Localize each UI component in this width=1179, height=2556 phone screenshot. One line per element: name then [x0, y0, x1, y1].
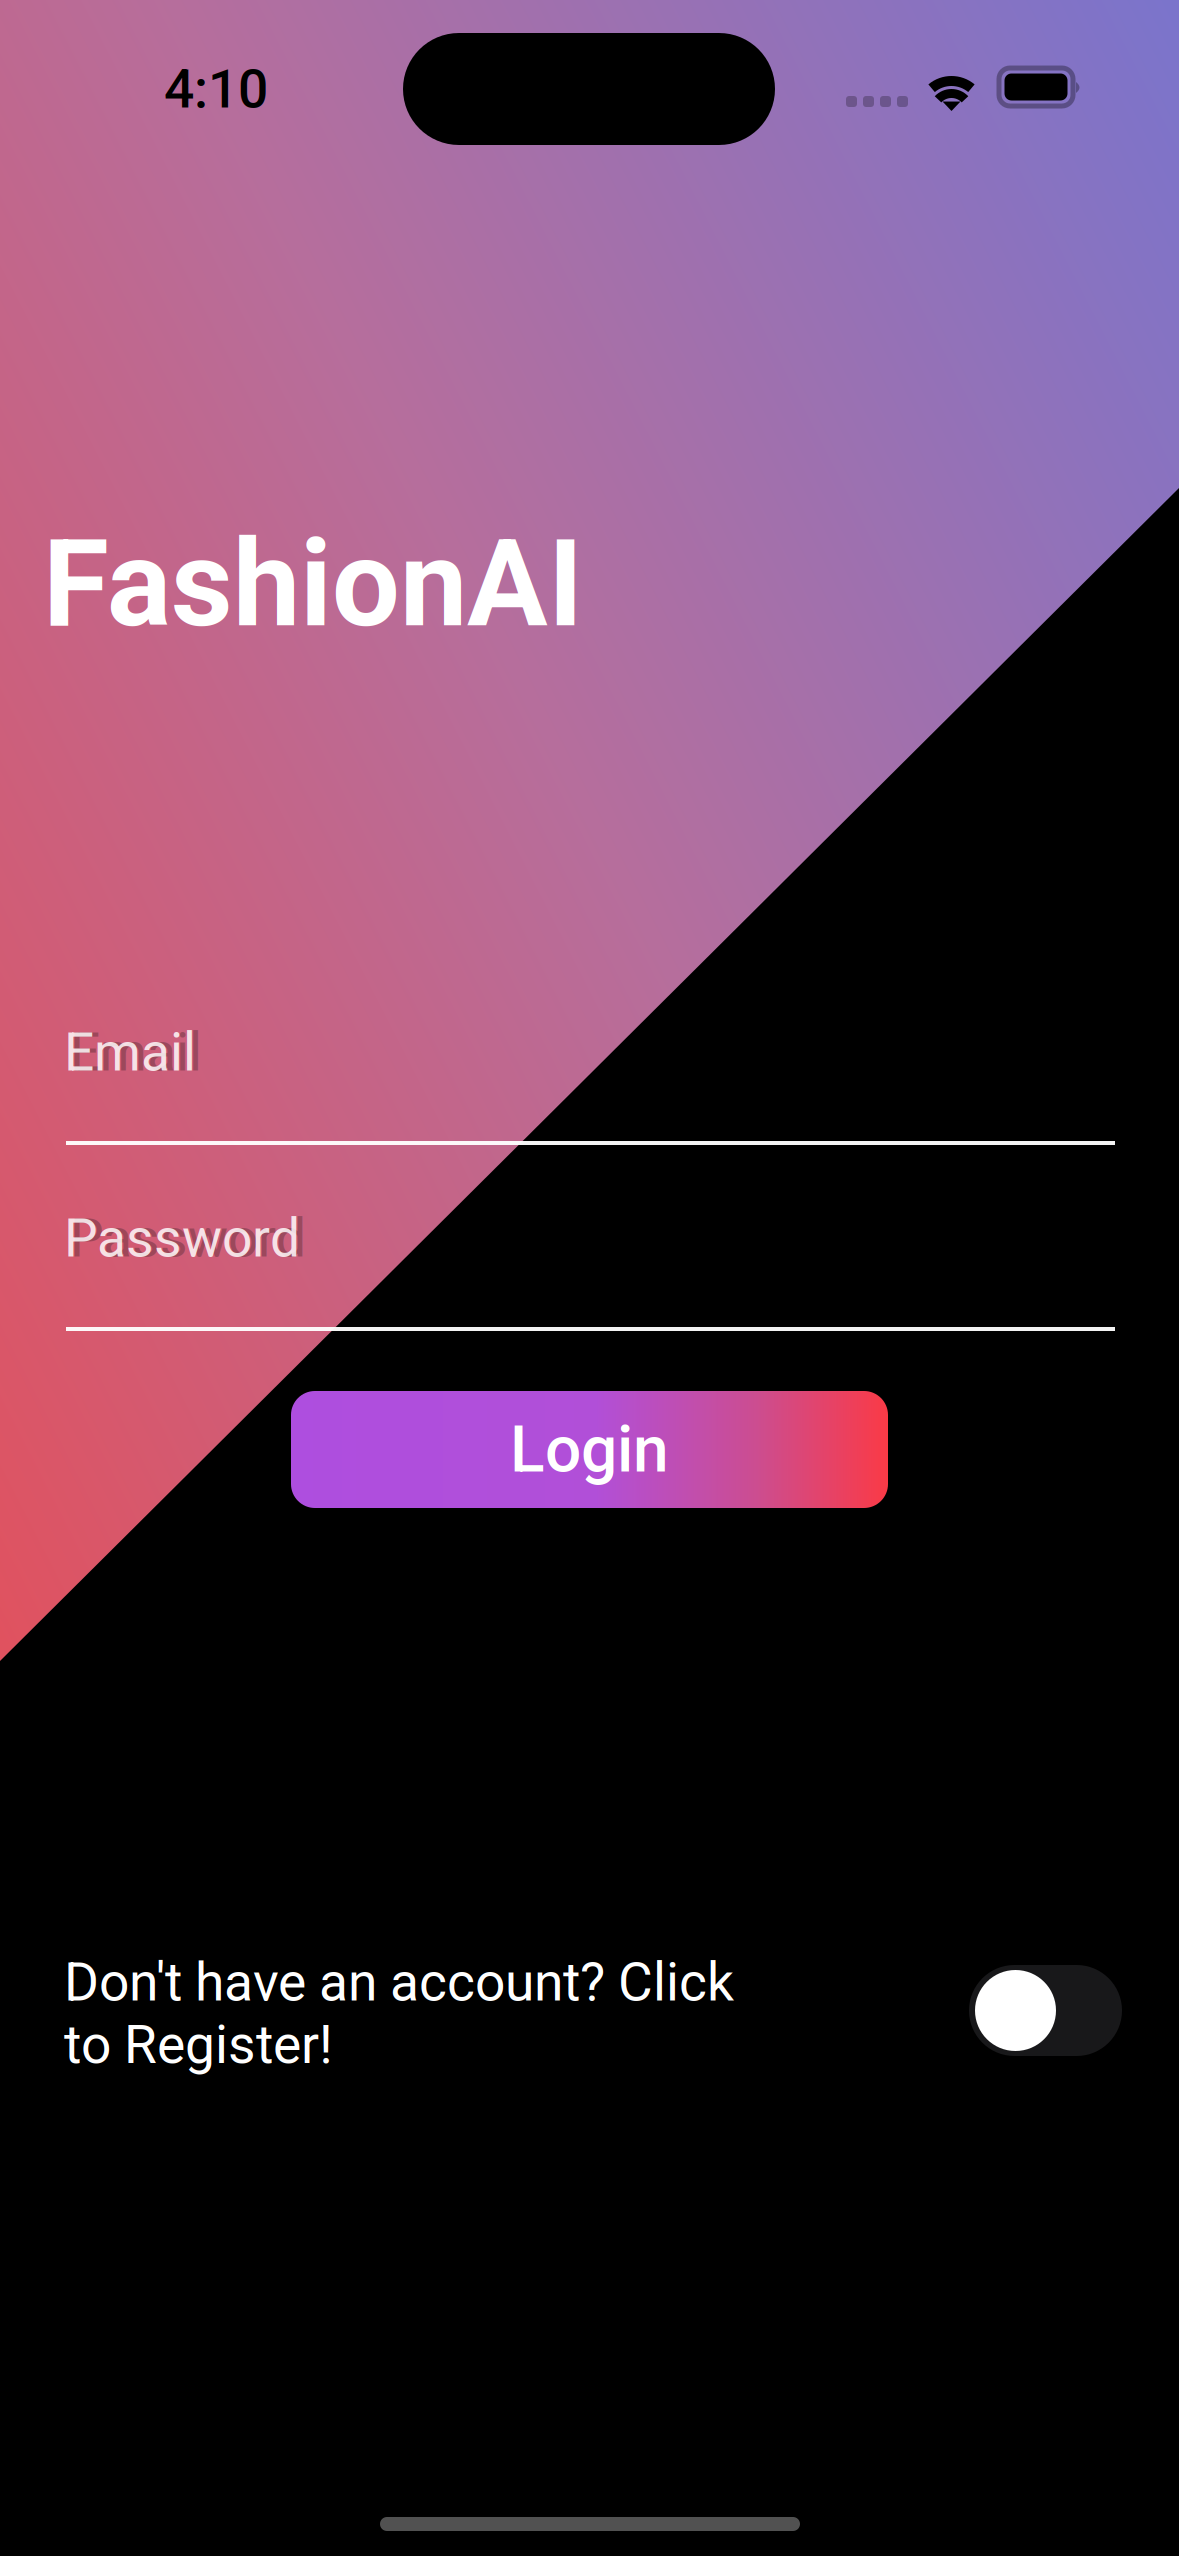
staticText: Email: [64, 1021, 196, 1083]
button[interactable]: Go to register: [969, 1965, 1122, 2056]
staticText: 4:10: [164, 58, 268, 120]
staticText: Don't have an account? Click to Register…: [64, 1951, 734, 2076]
button[interactable]: Login: [291, 1391, 888, 1508]
staticText: Email: [70, 1021, 202, 1083]
staticText: Login: [510, 1412, 669, 1487]
button[interactable]: Don't have an account? Click to Register…: [64, 1951, 744, 2076]
staticText: FashionAI: [43, 514, 583, 655]
staticText: Password: [70, 1207, 306, 1269]
staticText: Password: [64, 1207, 300, 1269]
